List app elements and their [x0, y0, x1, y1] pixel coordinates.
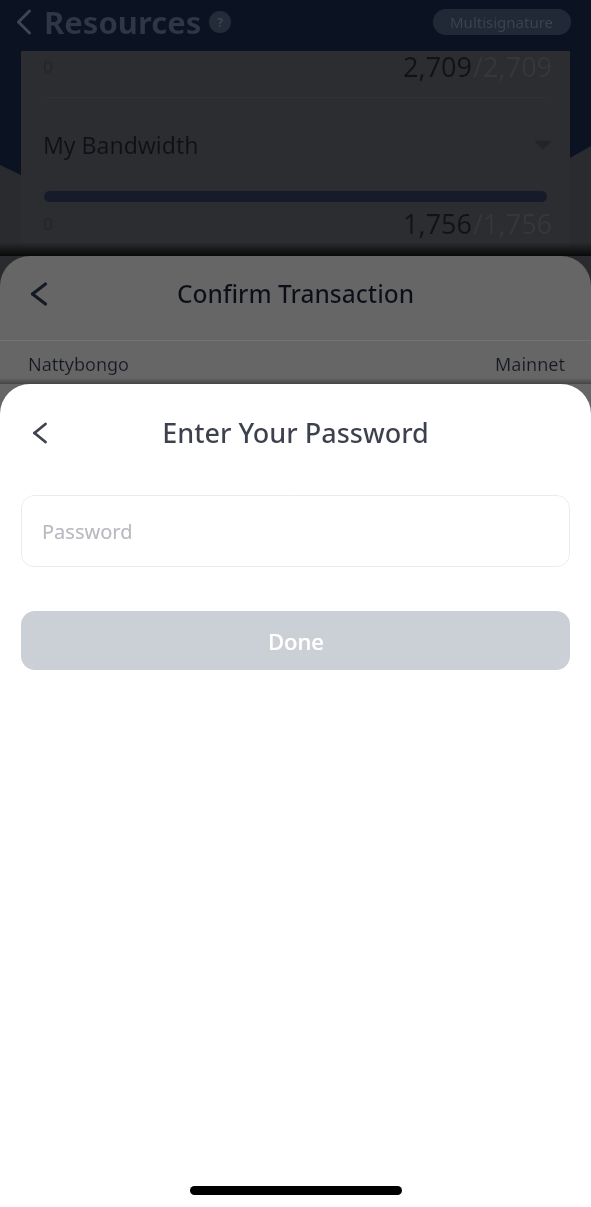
- button[interactable]: Back: [19, 274, 59, 314]
- button[interactable]: My Bandwidth: [21, 122, 570, 166]
- staticText: ?: [217, 13, 224, 31]
- staticText: Resources: [44, 1, 202, 43]
- staticText: Multisignature: [450, 12, 554, 32]
- staticText: My Bandwidth: [43, 129, 199, 160]
- staticText: Password: [42, 518, 133, 545]
- button[interactable]: Password: [21, 495, 570, 567]
- staticText: 0: [43, 55, 53, 78]
- button[interactable]: Back: [20, 413, 60, 453]
- button[interactable]: Done: [21, 611, 570, 670]
- staticText: Enter Your Password: [0, 414, 591, 451]
- staticText: 2,709: [403, 48, 473, 85]
- staticText: 1,756: [403, 205, 473, 242]
- staticText: /2,709: [473, 48, 553, 85]
- button[interactable]: Help: [209, 11, 231, 33]
- staticText: 0: [43, 212, 53, 235]
- staticText: Mainnet: [495, 352, 565, 377]
- button[interactable]: Multisignature: [433, 9, 571, 35]
- button[interactable]: Back: [4, 2, 44, 42]
- staticText: /1,756: [473, 205, 553, 242]
- staticText: Nattybongo: [28, 352, 129, 377]
- staticText: Done: [268, 626, 324, 656]
- staticText: Confirm Transaction: [0, 277, 591, 310]
